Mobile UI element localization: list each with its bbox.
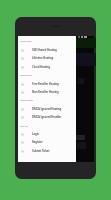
button[interactable]: DMCA Ignored Hosting: [18, 105, 76, 113]
staticText: Login: [32, 132, 40, 136]
staticText: Client Area: [20, 125, 29, 127]
button[interactable]: DMCA Ignored Reseller: [18, 113, 76, 121]
button[interactable]: Non Reseller Hosting: [18, 88, 76, 96]
staticText: DMCA Ignored Reseller: [32, 115, 62, 119]
staticText: Non Reseller Hosting: [32, 90, 59, 94]
staticText: Shared Hosting: [20, 40, 32, 42]
button[interactable]: Free Reseller Hosting: [18, 80, 76, 88]
button[interactable]: SSD Shared Hosting: [18, 46, 76, 54]
button[interactable]: Register: [18, 138, 76, 146]
button[interactable]: Submit Ticket: [18, 147, 76, 155]
staticText: Register: [32, 140, 43, 144]
staticText: Free Reseller Hosting: [32, 82, 59, 86]
staticText: Lifetime Hosting: [32, 56, 54, 60]
staticText: SSD Shared Hosting: [32, 48, 57, 52]
staticText: Reseller Hosting: [20, 74, 33, 76]
staticText: Offshore Hosting: [20, 99, 33, 101]
button[interactable]: Login: [18, 130, 76, 138]
button[interactable]: Cloud Hosting: [18, 63, 76, 71]
staticText: Cloud Hosting: [32, 65, 50, 69]
staticText: DMCA Ignored Hosting: [32, 107, 62, 111]
staticText: Submit Ticket: [32, 149, 50, 153]
button[interactable]: Lifetime Hosting: [18, 54, 76, 62]
